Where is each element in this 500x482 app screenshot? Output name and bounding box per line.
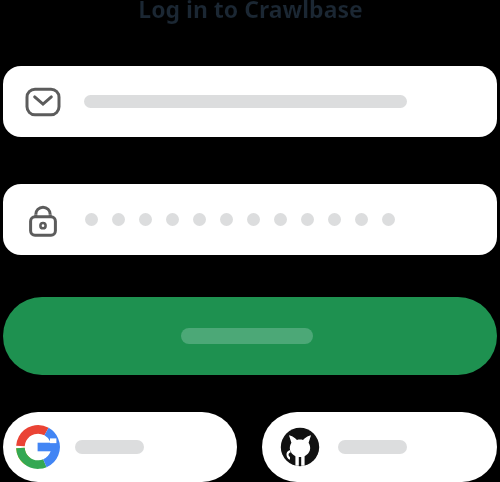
- other: Password: [23, 200, 63, 240]
- button[interactable]: Email: [3, 66, 497, 137]
- button[interactable]: Sign in with GitHub: [262, 412, 497, 482]
- button[interactable]: Log in: [3, 297, 497, 375]
- button[interactable]: Sign in with Google: [3, 412, 237, 482]
- staticText: Log in to Crawlbase: [138, 0, 363, 24]
- button[interactable]: Password: [3, 184, 497, 255]
- other: Email: [23, 82, 63, 122]
